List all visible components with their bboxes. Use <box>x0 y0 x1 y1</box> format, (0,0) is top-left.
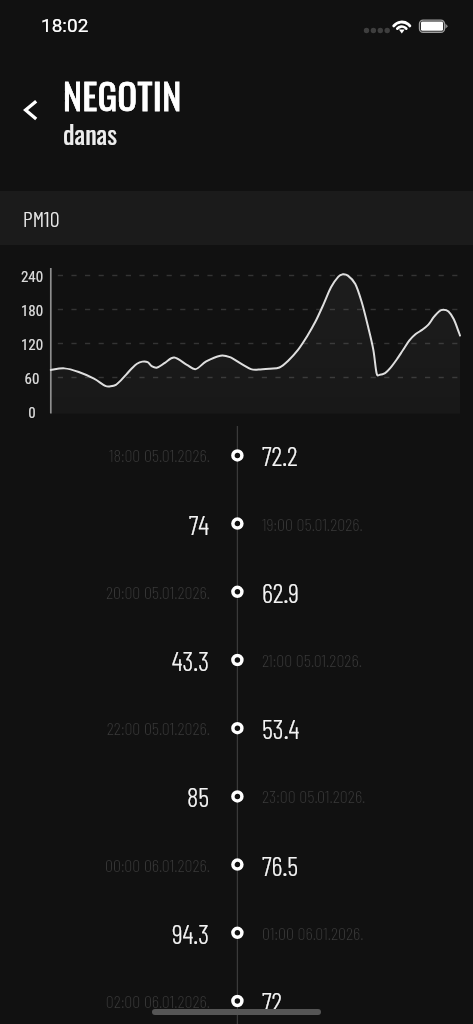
button[interactable]: 00:00 06.01.2026. <box>0 841 473 889</box>
staticText: 00:00 06.01.2026. <box>0 854 210 876</box>
staticText: 0 <box>7 404 57 422</box>
staticText: 23:00 05.01.2026. <box>262 785 366 807</box>
staticText: 18:02 <box>41 14 89 36</box>
staticText: danas <box>63 114 117 153</box>
staticText: 01:00 06.01.2026. <box>262 922 364 944</box>
staticText: 240 <box>7 268 57 286</box>
button[interactable]: Back <box>9 93 43 127</box>
button[interactable]: 85 <box>0 772 473 820</box>
staticText: 43.3 <box>0 644 209 676</box>
staticText: NEGOTIN <box>63 68 182 121</box>
staticText: 180 <box>7 302 57 320</box>
staticText: 60 <box>7 370 57 388</box>
button[interactable]: 94.3 <box>0 909 473 957</box>
button[interactable]: 18:00 05.01.2026. <box>0 431 473 479</box>
button[interactable]: 02:00 06.01.2026. <box>0 977 473 1024</box>
staticText: 85 <box>0 780 209 812</box>
staticText: 62.9 <box>262 576 299 608</box>
staticText: 53.4 <box>262 712 300 744</box>
button[interactable]: 74 <box>0 500 473 548</box>
staticText: PM10 <box>23 205 60 231</box>
staticText: 120 <box>7 336 57 354</box>
button[interactable]: 22:00 05.01.2026. <box>0 704 473 752</box>
staticText: 72.2 <box>262 439 298 471</box>
button[interactable]: 43.3 <box>0 636 473 684</box>
staticText: 21:00 05.01.2026. <box>262 649 362 671</box>
button[interactable]: 20:00 05.01.2026. <box>0 568 473 616</box>
button[interactable]: PM10 <box>0 191 473 245</box>
staticText: 19:00 05.01.2026. <box>262 513 363 535</box>
staticText: 18:00 05.01.2026. <box>0 444 210 466</box>
staticText: 74 <box>0 508 209 540</box>
staticText: 94.3 <box>0 917 209 949</box>
staticText: 02:00 06.01.2026. <box>0 990 210 1012</box>
staticText: 72 <box>262 985 283 1017</box>
staticText: 22:00 05.01.2026. <box>0 717 210 739</box>
staticText: NEGOTIN <box>63 68 182 121</box>
staticText: 20:00 05.01.2026. <box>0 581 210 603</box>
staticText: 76.5 <box>262 849 299 881</box>
